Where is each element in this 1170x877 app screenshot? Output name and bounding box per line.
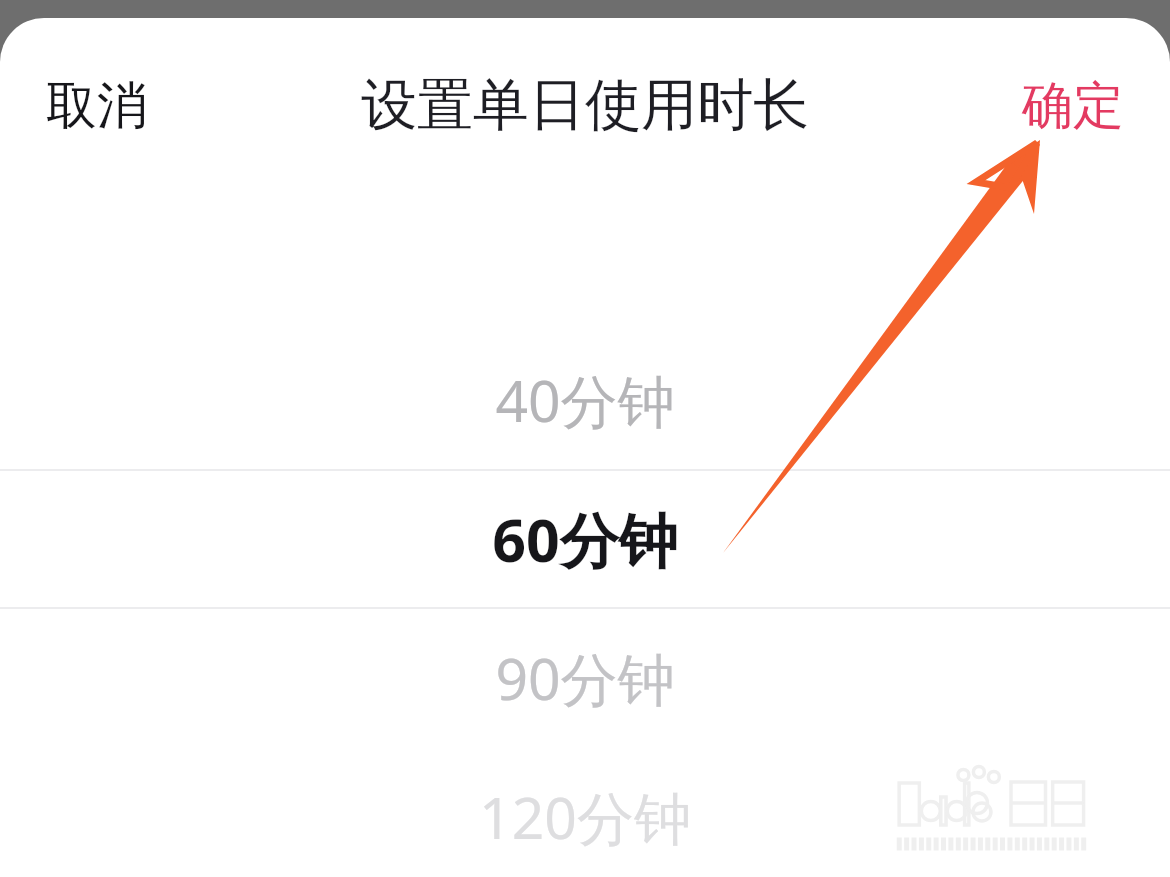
button[interactable]: 60分钟	[0, 471, 1170, 607]
staticText: 确定	[1022, 74, 1124, 138]
button[interactable]: 40分钟	[0, 331, 1170, 469]
staticText: 40分钟	[495, 361, 675, 439]
button[interactable]: 确定	[1004, 60, 1142, 152]
staticText: 120分钟	[479, 778, 691, 856]
button[interactable]: 90分钟	[0, 609, 1170, 747]
other: Annotation arrow pointing at 确定	[0, 18, 1170, 877]
staticText: 60分钟	[492, 499, 678, 580]
button[interactable]: 取消	[28, 60, 166, 152]
button[interactable]: 120分钟	[0, 747, 1170, 877]
staticText: 90分钟	[495, 639, 675, 717]
staticText: 设置单日使用时长	[0, 70, 1170, 141]
staticText: 取消	[46, 74, 148, 138]
